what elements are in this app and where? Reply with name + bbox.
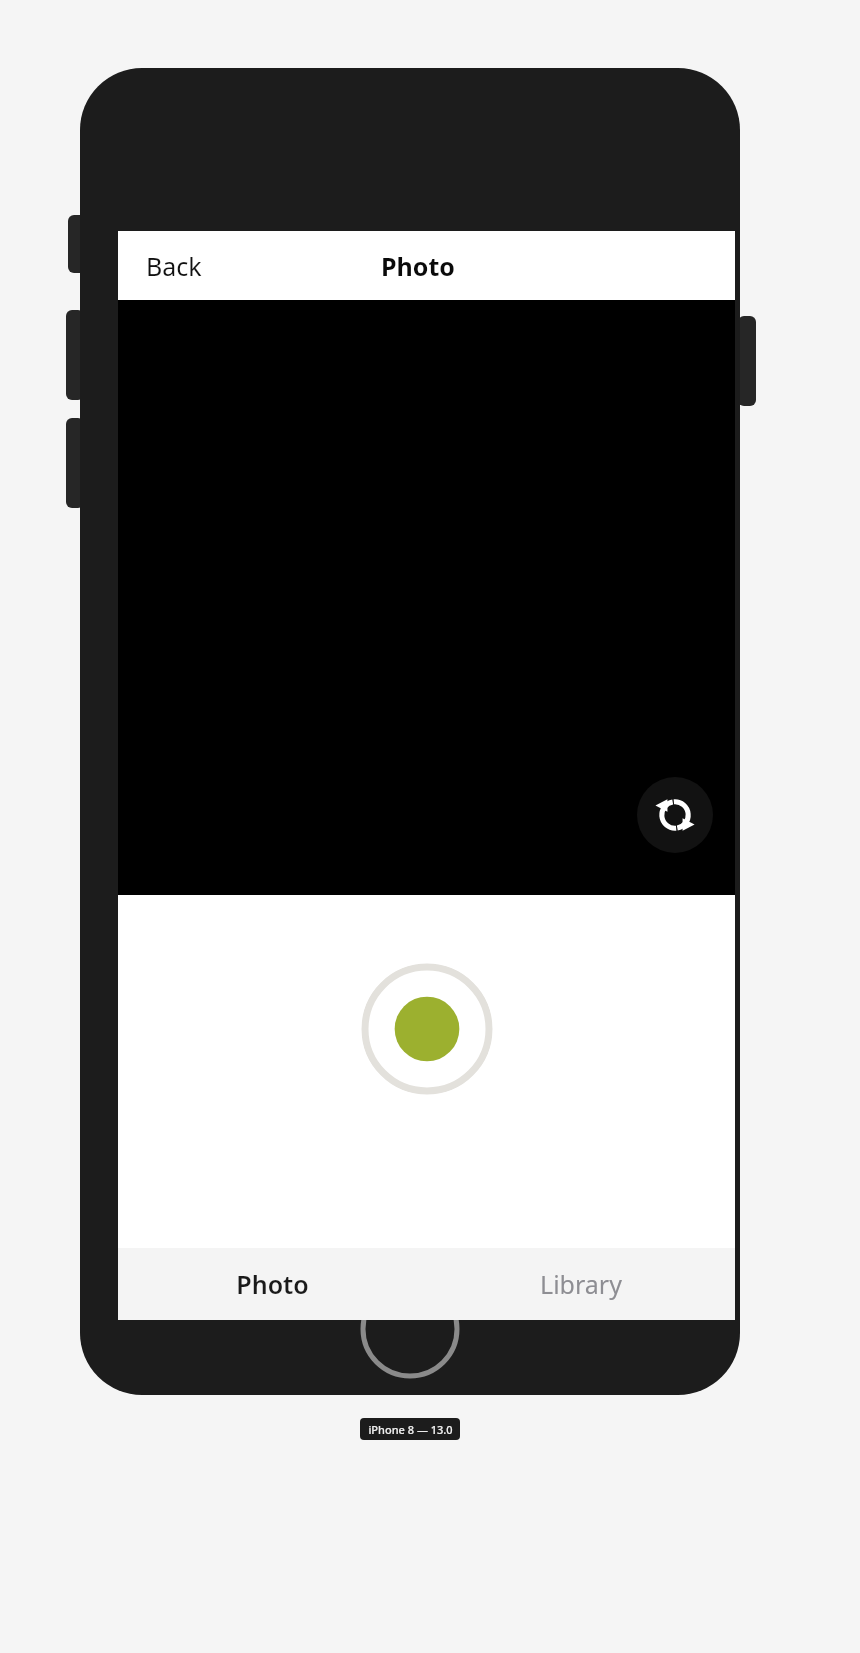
button[interactable]: Home [360, 1279, 460, 1379]
staticText: iPhone 8 — 13.0 [368, 1422, 453, 1437]
staticText: Photo [236, 1267, 309, 1301]
staticText: Photo [381, 249, 455, 283]
staticText: Library [540, 1267, 622, 1301]
button[interactable]: Flip camera [637, 777, 713, 853]
button[interactable]: Take photo [361, 963, 493, 1095]
button[interactable]: Photo [118, 1248, 426, 1320]
button[interactable]: Library [426, 1248, 735, 1320]
button[interactable]: Back [126, 239, 222, 293]
staticText: Back [146, 249, 202, 283]
